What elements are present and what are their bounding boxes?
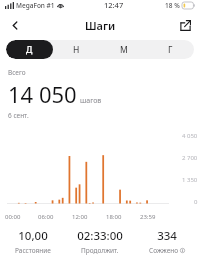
button[interactable]: М [100, 40, 147, 59]
staticText: 12:00 [72, 213, 88, 221]
staticText: Сожжено [149, 246, 179, 255]
staticText: Д [26, 44, 33, 56]
staticText: Всего [8, 68, 26, 77]
staticText: 00:00 [5, 213, 21, 221]
staticText: 14 050 [8, 79, 77, 109]
button[interactable]: 334 [133, 228, 200, 255]
staticText: 06:00 [38, 213, 54, 221]
button[interactable]: Д [6, 40, 53, 59]
button[interactable]: Back [4, 14, 26, 36]
staticText: 4 050 [182, 132, 198, 140]
button[interactable]: Н [53, 40, 100, 59]
staticText: 10,00 [18, 228, 48, 244]
staticText: Н [73, 44, 80, 56]
staticText: Шаги [85, 18, 116, 33]
staticText: 334 [157, 228, 177, 244]
staticText: 02:33:00 [77, 228, 123, 244]
staticText: Расстояние [15, 246, 51, 255]
staticText: 2 700 [182, 154, 198, 162]
staticText: шагов [80, 96, 102, 106]
staticText: 1 350 [182, 176, 198, 184]
staticText: 0 [194, 198, 198, 206]
staticText: 18 % [165, 1, 180, 10]
staticText: 23:59 [140, 213, 156, 221]
staticText: М [120, 44, 128, 56]
staticText: Продолжит. [81, 246, 119, 255]
staticText: Г [168, 44, 173, 56]
staticText: 18:00 [106, 213, 122, 221]
button[interactable]: Share [174, 14, 196, 36]
staticText: 12:47 [104, 0, 124, 10]
button[interactable]: 02:33:00 [66, 228, 133, 255]
button[interactable]: 10,00 [0, 228, 66, 255]
staticText: 6 сент. [8, 111, 29, 120]
button[interactable]: Г [147, 40, 194, 59]
staticText: MegaFon #1 [16, 1, 55, 10]
